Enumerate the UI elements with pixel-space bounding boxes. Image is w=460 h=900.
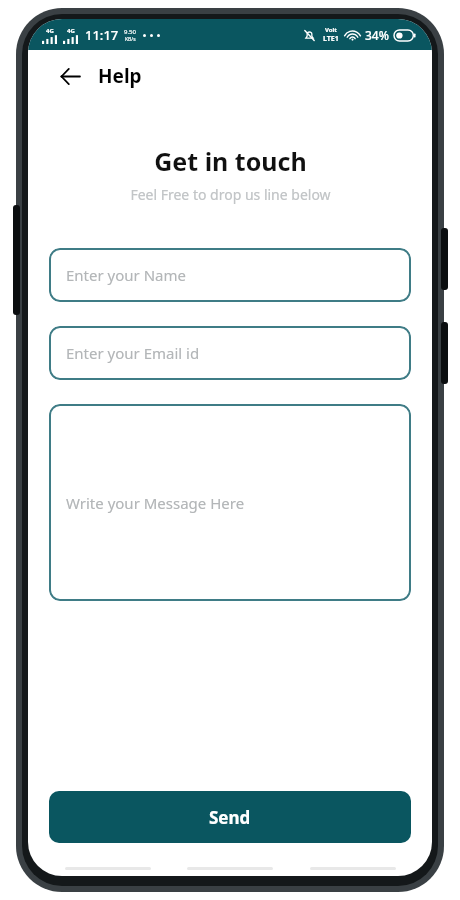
button[interactable]: Enter your Email id bbox=[49, 326, 411, 380]
staticText: Enter your Name bbox=[66, 265, 186, 285]
button[interactable]: Send bbox=[49, 791, 411, 843]
staticText: 11:17 bbox=[85, 26, 119, 44]
staticText: KB/s bbox=[125, 36, 136, 43]
staticText: LTE1 bbox=[323, 34, 339, 44]
staticText: 9.50 bbox=[124, 28, 136, 36]
staticText: 4G bbox=[67, 27, 75, 35]
staticText: Volt bbox=[325, 26, 337, 34]
staticText: Help bbox=[98, 63, 142, 89]
button[interactable]: Back bbox=[50, 56, 90, 96]
staticText: Send bbox=[209, 806, 251, 829]
button[interactable]: Enter your Name bbox=[49, 248, 411, 302]
staticText: 34% bbox=[365, 27, 389, 43]
staticText: Feel Free to drop us line below bbox=[130, 185, 331, 204]
staticText: 4G bbox=[46, 27, 54, 35]
staticText: Write your Message Here bbox=[66, 493, 245, 513]
button[interactable]: Write your Message Here bbox=[49, 404, 411, 601]
staticText: Get in touch bbox=[154, 144, 307, 178]
staticText: Enter your Email id bbox=[66, 343, 200, 363]
